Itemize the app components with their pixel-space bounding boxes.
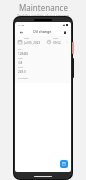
button[interactable]: Time	[47, 36, 68, 47]
button[interactable]: Back	[18, 29, 24, 35]
staticText: Comment	[18, 77, 29, 80]
button[interactable]: Km	[15, 47, 71, 56]
staticText: 09:52	[53, 41, 61, 45]
staticText: Price	[18, 66, 24, 69]
staticText: Km	[18, 48, 22, 51]
staticText: 249.0	[18, 70, 26, 74]
staticText: Maintenance	[19, 2, 68, 13]
staticText: Jul 05, 2023	[24, 41, 41, 45]
staticText: 128445	[18, 52, 29, 56]
button[interactable]: Date	[18, 36, 45, 47]
button[interactable]: Comment	[15, 74, 71, 83]
staticText: 12:30	[18, 23, 25, 26]
staticText: 3.8	[18, 61, 23, 65]
staticText: Oil change	[33, 29, 52, 34]
button[interactable]: Save	[60, 160, 68, 168]
button[interactable]: Delete	[62, 29, 68, 35]
staticText: Liter	[18, 57, 23, 60]
staticText: Time	[53, 37, 59, 40]
button[interactable]: Liter	[15, 56, 71, 65]
staticText: Date	[24, 37, 29, 40]
button[interactable]: Price	[15, 65, 71, 74]
staticText: Track the condition of your presence	[17, 14, 69, 18]
